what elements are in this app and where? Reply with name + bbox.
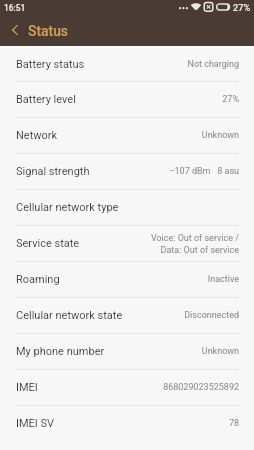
staticText: Cellular network state: [16, 309, 123, 322]
button[interactable]: Signal strength: [0, 154, 254, 190]
button[interactable]: Network: [0, 118, 254, 154]
staticText: My phone number: [16, 345, 105, 358]
staticText: Unknown: [201, 346, 239, 357]
staticText: Unknown: [201, 130, 239, 141]
staticText: 27%: [222, 94, 239, 105]
staticText: IMEI SV: [16, 417, 55, 430]
button[interactable]: Battery status: [0, 46, 254, 82]
staticText: IMEI: [16, 381, 38, 394]
staticText: 16:51: [4, 3, 26, 13]
button[interactable]: Back: [0, 16, 28, 46]
staticText: Disconnected: [184, 310, 239, 321]
staticText: Battery status: [16, 58, 85, 71]
staticText: Roaming: [16, 273, 60, 286]
staticText: Inactive: [207, 274, 239, 285]
button[interactable]: Service state: [0, 226, 254, 262]
staticText: Cellular network type: [16, 201, 119, 214]
staticText: Not charging: [187, 59, 239, 70]
staticText: 868029023525892: [163, 382, 239, 393]
button[interactable]: IMEI: [0, 370, 254, 406]
staticText: 27%: [233, 2, 251, 13]
button[interactable]: Battery level: [0, 82, 254, 118]
staticText: −107 dBm 8 asu: [169, 166, 239, 177]
staticText: Voice: Out of service / Data: Out of ser…: [150, 233, 239, 255]
staticText: Status: [28, 23, 69, 39]
staticText: Signal strength: [16, 165, 90, 178]
staticText: Network: [16, 129, 58, 142]
button[interactable]: Cellular network type: [0, 190, 254, 226]
button[interactable]: IMEI SV: [0, 406, 254, 441]
staticText: Battery level: [16, 93, 76, 106]
button[interactable]: Roaming: [0, 262, 254, 298]
staticText: Service state: [16, 237, 80, 250]
button[interactable]: Cellular network state: [0, 298, 254, 334]
button[interactable]: My phone number: [0, 334, 254, 370]
staticText: 78: [228, 418, 239, 429]
